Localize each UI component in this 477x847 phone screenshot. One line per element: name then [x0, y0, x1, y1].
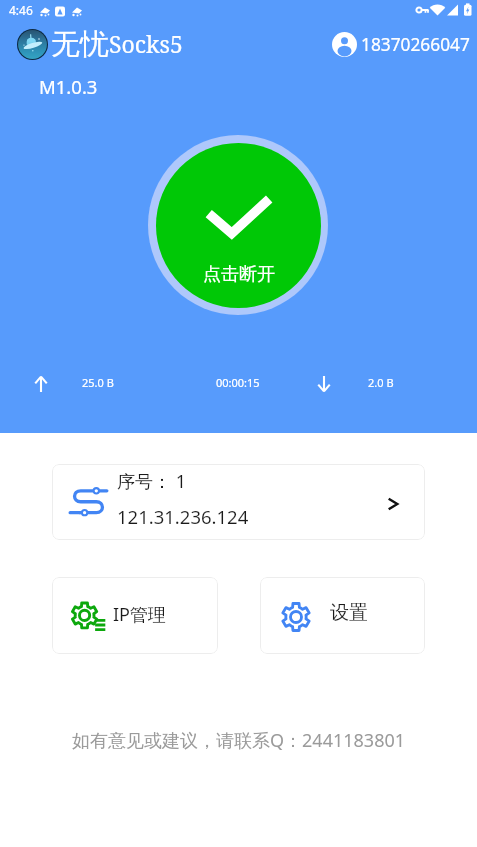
button[interactable]: 序号： 1 — [52, 464, 425, 540]
staticText: 点击断开 — [203, 263, 275, 286]
other: Account — [332, 32, 357, 57]
staticText: 如有意见或建议，请联系Q：2441183801 — [72, 728, 406, 753]
staticText: 4:46 — [9, 2, 33, 18]
other: Download — [318, 376, 330, 392]
staticText: 18370266047 — [361, 33, 470, 57]
button[interactable]: 点击断开 — [148, 135, 328, 315]
staticText: 00:00:15 — [216, 375, 260, 390]
button[interactable]: Settings — [260, 577, 425, 654]
staticText: 121.31.236.124 — [117, 504, 249, 529]
other: Upload — [35, 376, 47, 392]
staticText: 25.0 B — [82, 375, 114, 390]
staticText: 设置 — [330, 601, 368, 625]
staticText: 无忧 — [51, 26, 109, 63]
staticText: 序号： 1 — [117, 469, 186, 494]
button[interactable]: Account — [332, 32, 470, 57]
staticText: IP管理 — [113, 602, 166, 627]
other: IP manage — [72, 601, 106, 631]
staticText: M1.0.3 — [39, 74, 98, 99]
staticText: 2.0 B — [368, 375, 394, 390]
other: Settings — [281, 602, 311, 632]
staticText: Socks5 — [109, 28, 183, 59]
button[interactable]: IP manage — [52, 577, 218, 654]
